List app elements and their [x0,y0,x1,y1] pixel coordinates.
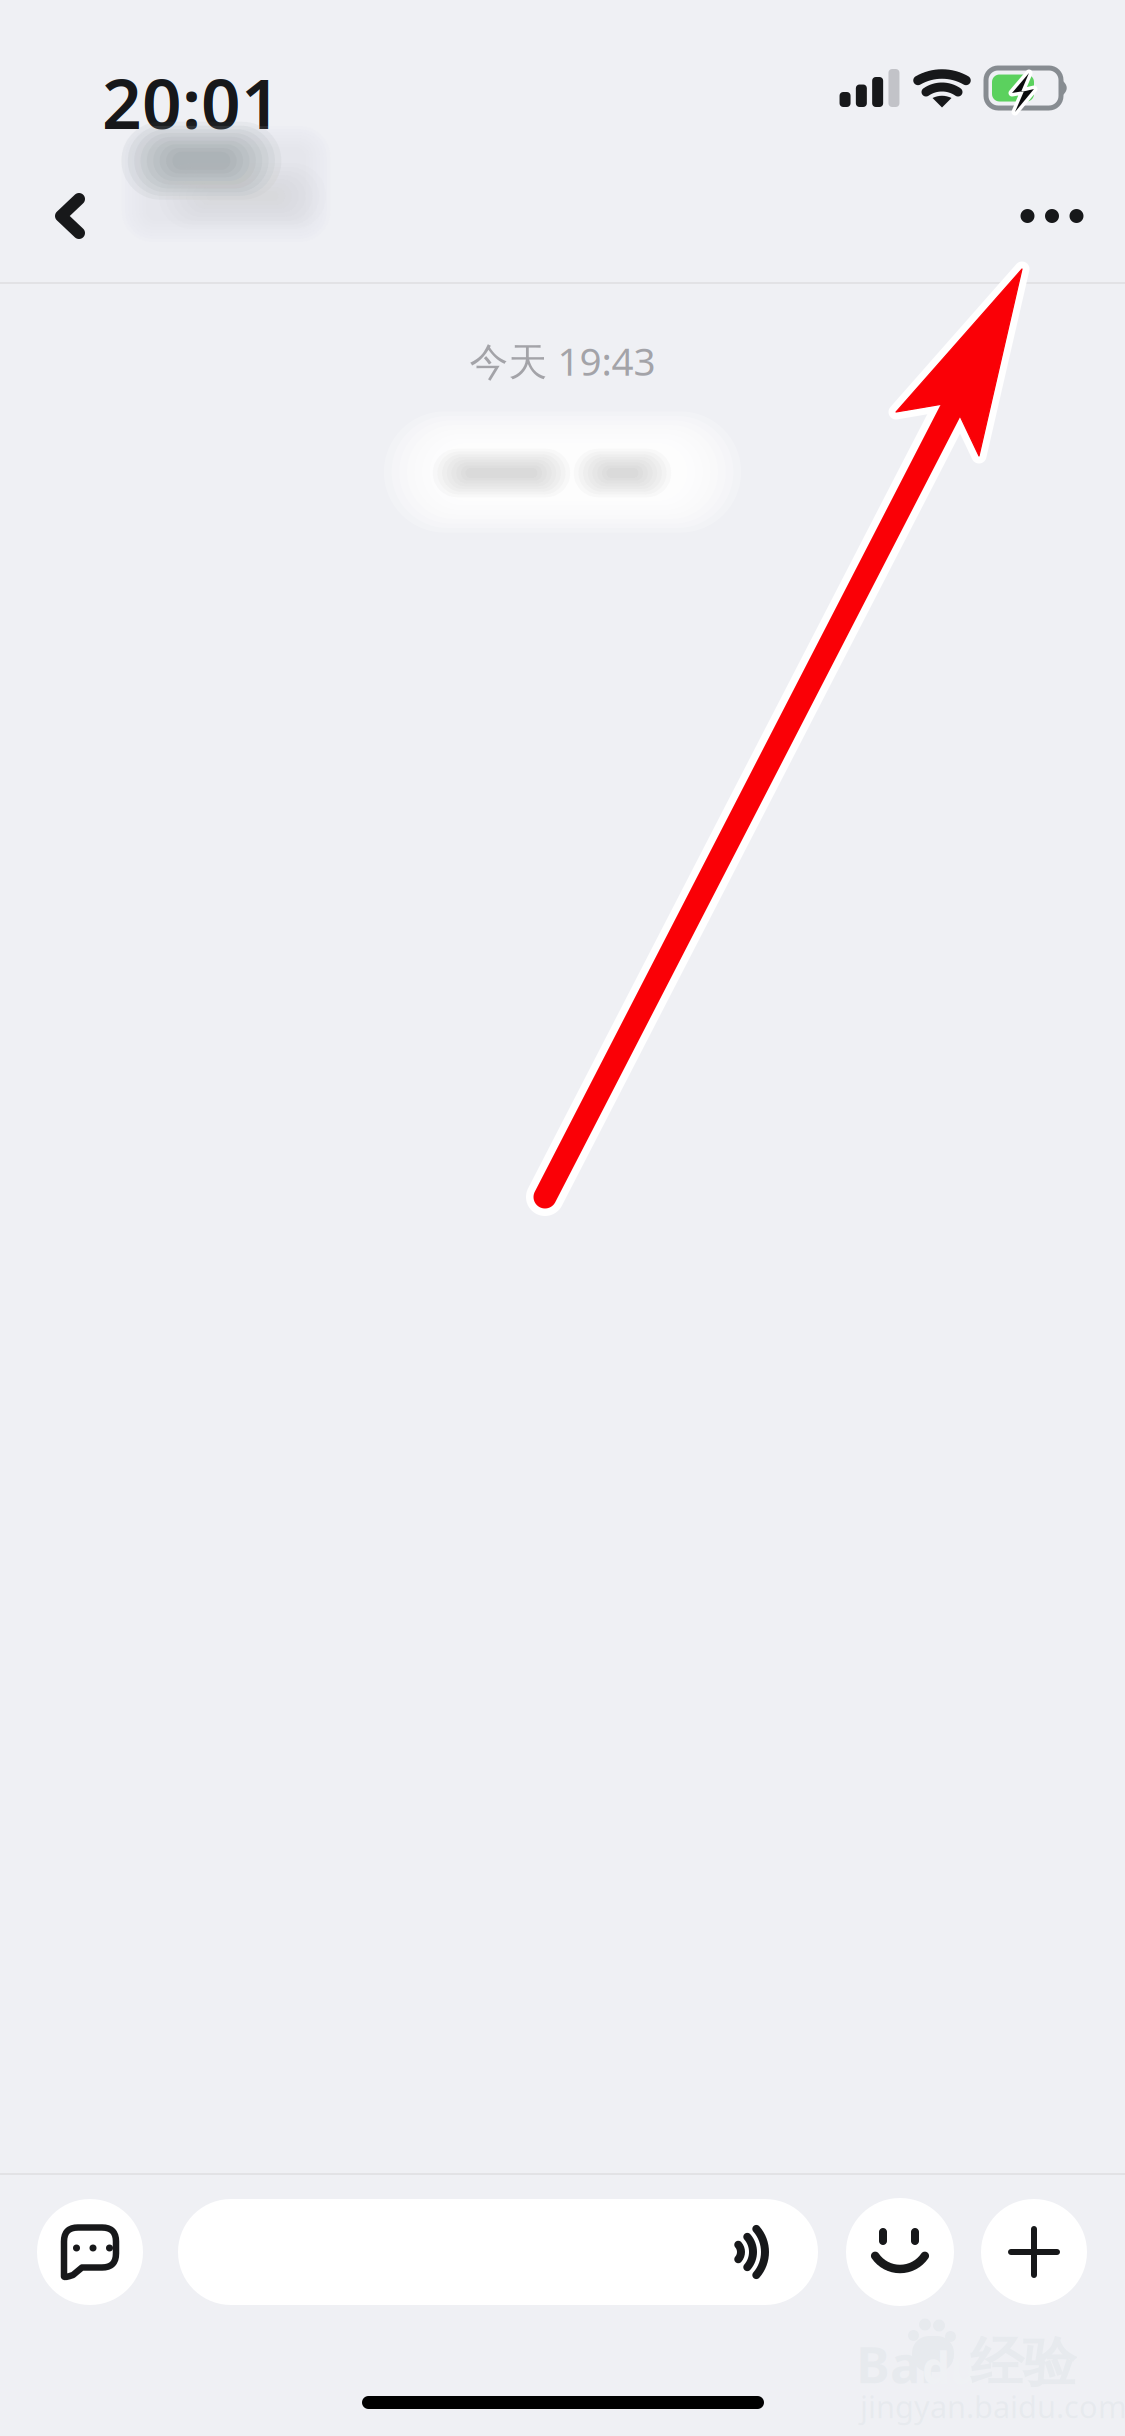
button[interactable]: Emoji [846,2198,954,2306]
button[interactable]: Back [22,161,118,271]
staticText: Bai [856,2330,935,2397]
staticText: 经验 [970,2330,1076,2395]
button[interactable]: More [991,161,1113,271]
button[interactable]: More options [981,2199,1087,2305]
staticText: du [922,2338,979,2396]
staticText: 20:01 [102,56,281,148]
button[interactable]: Voice input [37,2199,143,2305]
button[interactable]: Message [178,2199,818,2305]
staticText: 今天 19:43 [469,335,655,386]
